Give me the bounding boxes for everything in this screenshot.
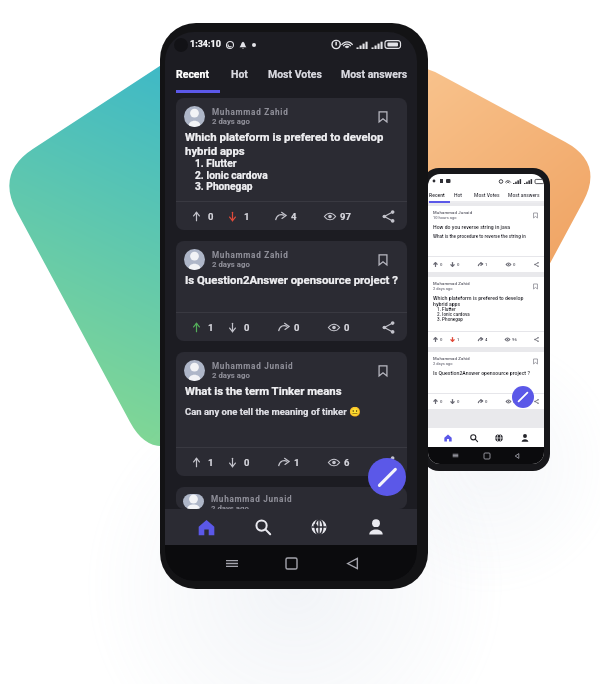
button[interactable]: 97 — [324, 211, 351, 222]
staticText: Most Votes — [474, 192, 500, 198]
button[interactable]: Share — [382, 456, 395, 469]
staticText: Muhammad Zahid — [212, 250, 289, 260]
staticText: 4 — [485, 337, 488, 342]
button[interactable]: Bookmark — [532, 212, 539, 219]
staticText: 1 — [457, 337, 460, 342]
staticText: Which plateform is prefered to develop h… — [433, 295, 524, 307]
staticText: 0 — [244, 322, 250, 333]
staticText: Hot — [231, 68, 248, 80]
staticText: Which plateform is prefered to develop h… — [185, 130, 384, 158]
staticText: 0 — [457, 399, 460, 404]
button[interactable]: Search — [467, 431, 480, 444]
staticText: 0 — [244, 457, 250, 468]
staticText: 1 — [208, 457, 214, 468]
staticText: What is the procedure to reverse the str… — [433, 234, 526, 239]
button[interactable]: Muhammad Junaid — [176, 487, 407, 509]
staticText: 2 days ago — [212, 117, 250, 126]
button[interactable]: Explore — [492, 431, 505, 444]
button[interactable]: 0 — [228, 457, 250, 468]
staticText: 0 — [440, 399, 443, 404]
staticText: 0 — [344, 322, 350, 333]
staticText: Muhammad Junaid — [433, 210, 473, 215]
button[interactable]: Bookmark — [376, 364, 390, 378]
button[interactable]: 4 — [275, 211, 297, 222]
staticText: 6 — [344, 457, 350, 468]
button[interactable]: 0 — [228, 322, 250, 333]
staticText: 1 — [485, 262, 488, 267]
button[interactable]: Most Votes — [474, 188, 500, 201]
button[interactable]: Profile — [361, 512, 391, 542]
staticText: 2 days ago — [433, 286, 453, 291]
staticText: Recent — [429, 192, 445, 198]
staticText: 4 — [291, 211, 297, 222]
button[interactable]: Ask question — [368, 458, 406, 496]
button[interactable]: Muhammad Zahid — [428, 277, 544, 347]
staticText: Most answers — [341, 68, 408, 80]
button[interactable]: Muhammad Zahid — [428, 352, 544, 409]
staticText: Muhammad Zahid — [212, 107, 289, 117]
staticText: Muhammad Zahid — [433, 356, 470, 361]
button[interactable]: Muhammad Zahid — [176, 98, 407, 230]
button[interactable]: Recent — [429, 188, 445, 201]
button[interactable]: Recent — [176, 57, 209, 90]
button[interactable]: 0 — [278, 322, 300, 333]
button[interactable]: Bookmark — [376, 110, 390, 124]
staticText: 0 — [457, 262, 460, 267]
staticText: 1:34:10 — [190, 39, 221, 50]
button[interactable]: Bookmark — [532, 283, 539, 290]
button[interactable]: Most Votes — [268, 57, 322, 90]
button[interactable]: 1 — [278, 457, 300, 468]
staticText: Muhammad Junaid — [212, 361, 294, 371]
staticText: 1 — [294, 457, 300, 468]
button[interactable]: Ask question — [512, 386, 534, 408]
staticText: Recent — [176, 68, 209, 80]
button[interactable]: Most answers — [341, 57, 408, 90]
staticText: 2 days ago — [212, 260, 250, 269]
staticText: Muhammad Junaid — [211, 494, 293, 504]
staticText: Most Votes — [268, 68, 322, 80]
button[interactable]: 6 — [328, 457, 350, 468]
button[interactable]: Bookmark — [376, 253, 390, 267]
button[interactable]: Home — [191, 512, 221, 542]
staticText: 96 — [512, 337, 517, 342]
button[interactable]: Share — [382, 210, 395, 223]
staticText: Is Question2Answer opensource project ? — [185, 273, 398, 286]
button[interactable]: 1 — [192, 322, 214, 333]
staticText: 1. Flutter 2. Ionic cardova 3. Phonegap — [195, 158, 268, 193]
button[interactable]: 0 — [328, 322, 350, 333]
button[interactable]: Share — [382, 321, 395, 334]
staticText: 0 — [513, 262, 516, 267]
button[interactable]: Muhammad Zahid — [176, 241, 407, 341]
staticText: 97 — [340, 211, 351, 222]
button[interactable]: Search — [248, 512, 278, 542]
button[interactable]: Home — [441, 431, 454, 444]
staticText: 2 days ago — [211, 504, 249, 509]
button[interactable]: Muhammad Junaid — [176, 352, 407, 476]
button[interactable]: Hot — [454, 188, 463, 201]
button[interactable]: Most answers — [508, 188, 540, 201]
staticText: 0 — [208, 211, 214, 222]
button[interactable]: Home button — [280, 545, 302, 581]
button[interactable]: 1 — [228, 211, 250, 222]
button[interactable]: Hot — [231, 57, 248, 90]
button[interactable]: Muhammad Junaid — [428, 206, 544, 272]
staticText: 2 days ago — [212, 371, 250, 380]
staticText: 0 — [440, 262, 443, 267]
staticText: Is Question2Answer opensource project ? — [433, 370, 530, 376]
staticText: 0 — [294, 322, 300, 333]
button[interactable]: 0 — [192, 211, 214, 222]
staticText: What is the term Tinker means — [185, 384, 342, 397]
button[interactable]: Explore — [304, 512, 334, 542]
staticText: Most answers — [508, 192, 540, 198]
button[interactable]: Back — [341, 545, 363, 581]
staticText: How do you reverse string in java — [433, 224, 511, 230]
button[interactable]: Recents — [221, 545, 243, 581]
staticText: 0 — [485, 399, 488, 404]
staticText: Can any one tell the meaning of tinker 😐 — [185, 406, 361, 417]
staticText: 10 hours ago — [433, 215, 457, 220]
button[interactable]: Bookmark — [532, 358, 539, 365]
button[interactable]: Profile — [518, 431, 531, 444]
staticText: 0 — [440, 337, 443, 342]
button[interactable]: 1 — [192, 457, 214, 468]
staticText: Muhammad Zahid — [433, 281, 470, 286]
